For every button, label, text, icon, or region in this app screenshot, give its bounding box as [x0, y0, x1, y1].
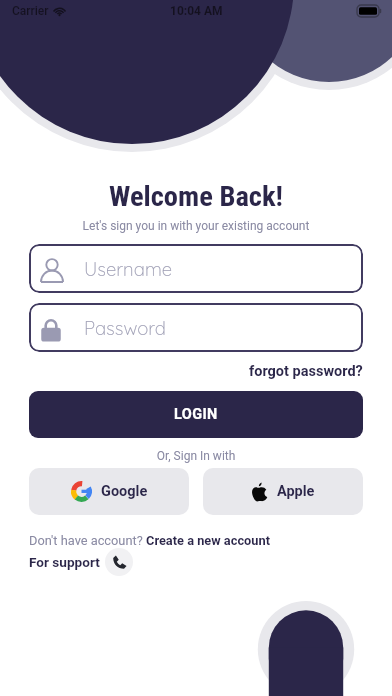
button[interactable]: forgot password? [249, 363, 363, 380]
staticText: 10:04 AM [170, 4, 223, 18]
staticText: Carrier [12, 4, 49, 18]
button[interactable]: Password [29, 303, 363, 352]
staticText: Don't have account? [29, 533, 146, 548]
button[interactable]: Username [29, 244, 363, 293]
staticText: For support [29, 554, 100, 570]
button[interactable]: Apple [203, 468, 363, 515]
button[interactable]: Google [29, 468, 189, 515]
staticText: Or, Sign In with [0, 449, 392, 463]
staticText: Google [101, 483, 148, 500]
staticText: Apple [277, 483, 315, 500]
staticText: Let's sign you in with your existing acc… [0, 219, 392, 233]
staticText: Password [84, 316, 166, 339]
button[interactable]: LOGIN [29, 391, 363, 438]
staticText: LOGIN [174, 406, 218, 423]
button[interactable]: Create a new account [146, 533, 270, 548]
button[interactable]: Call support [105, 548, 133, 576]
staticText: Username [84, 257, 173, 280]
staticText: Welcome Back! [0, 180, 392, 213]
